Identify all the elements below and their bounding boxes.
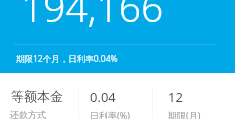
staticText: 0.04 — [90, 88, 116, 106]
staticText: 12 — [168, 88, 183, 106]
button[interactable] — [0, 0, 235, 73]
button[interactable]: 12 — [152, 73, 235, 119]
staticText: 194,166 — [21, 0, 164, 33]
staticText: 还款方式 — [10, 109, 46, 119]
button[interactable]: 0.04 — [78, 73, 152, 119]
staticText: 日利率(%) — [90, 109, 130, 119]
staticText: 期限12个月，日利率0.04% — [16, 53, 118, 65]
staticText: 等额本金 — [11, 88, 63, 104]
staticText: 期限(月) — [168, 109, 201, 119]
button[interactable]: 等额本金 — [0, 73, 78, 119]
